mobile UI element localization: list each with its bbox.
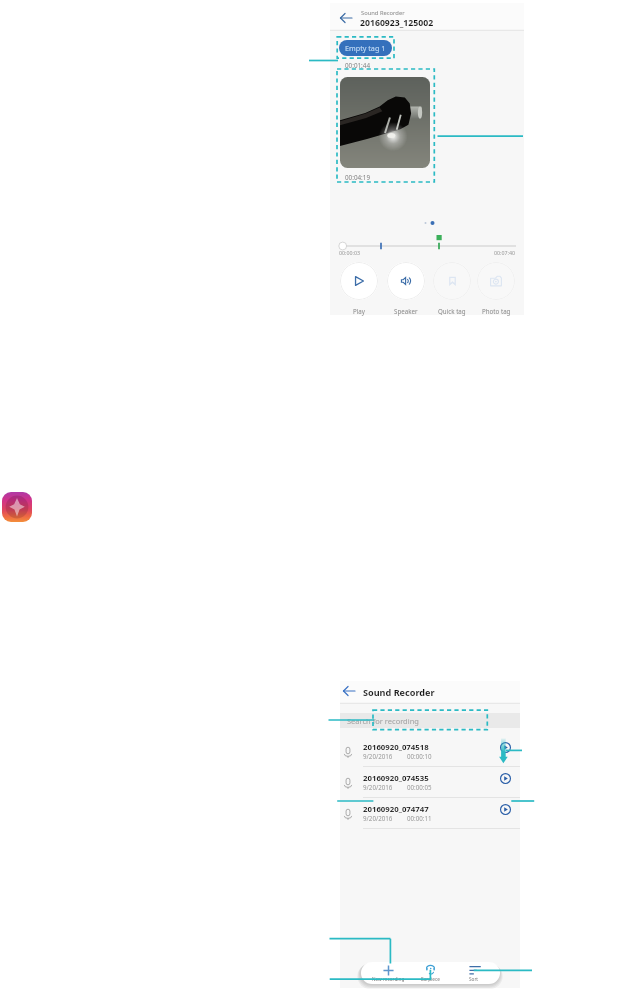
staticText: 20160920_074535 bbox=[363, 773, 429, 784]
button[interactable]: Back bbox=[343, 686, 355, 696]
button[interactable]: Photo tag bbox=[477, 262, 515, 300]
button[interactable]: Quick tag bbox=[433, 262, 471, 300]
staticText: Sort bbox=[469, 976, 479, 982]
staticText: Play bbox=[353, 307, 365, 315]
button[interactable]: Play bbox=[500, 804, 511, 815]
staticText: 00:00:11 bbox=[407, 814, 432, 822]
staticText: 00:00:03 bbox=[339, 249, 361, 256]
staticText: 20160920_074518 bbox=[363, 742, 429, 753]
staticText: 00:00:10 bbox=[407, 752, 432, 760]
button[interactable]: 20160920_074518 bbox=[340, 736, 520, 767]
staticText: Sound Recorder bbox=[363, 686, 435, 698]
staticText: 00:07:40 bbox=[494, 249, 516, 256]
button[interactable]: Speaker bbox=[387, 262, 425, 300]
staticText: Sound Recorder bbox=[361, 9, 405, 17]
staticText: 00:01:44 bbox=[345, 61, 370, 70]
staticText: 00:04:19 bbox=[345, 173, 370, 182]
button[interactable]: 20160920_074747 bbox=[340, 798, 520, 829]
staticText: Search for recording bbox=[347, 716, 419, 726]
button[interactable]: Empty tag 1 bbox=[339, 40, 392, 56]
button[interactable]: 20160920_074535 bbox=[340, 767, 520, 798]
button[interactable]: Search for recording bbox=[340, 713, 520, 728]
staticText: 9/20/2016 bbox=[363, 752, 393, 760]
staticText: 00:00:05 bbox=[407, 783, 432, 791]
staticText: Quick tag bbox=[438, 307, 466, 315]
other: App icon bbox=[2, 492, 32, 522]
staticText: Speaker bbox=[394, 307, 418, 315]
staticText: Photo tag bbox=[482, 307, 511, 315]
staticText: 9/20/2016 bbox=[363, 783, 393, 791]
button[interactable]: Sort bbox=[451, 962, 497, 984]
staticText: 20160923_125002 bbox=[360, 17, 434, 29]
staticText: 20160920_074747 bbox=[363, 804, 429, 815]
button[interactable]: Earpiece bbox=[407, 962, 453, 984]
staticText: New recording bbox=[372, 976, 405, 982]
staticText: Empty tag 1 bbox=[345, 43, 386, 53]
button[interactable]: Back bbox=[340, 13, 352, 23]
button[interactable]: Play bbox=[500, 773, 511, 784]
staticText: 9/20/2016 bbox=[363, 814, 393, 822]
button[interactable]: Play bbox=[340, 262, 378, 300]
staticText: Earpiece bbox=[421, 976, 440, 982]
button[interactable]: New recording bbox=[365, 962, 411, 984]
button[interactable]: Play bbox=[500, 742, 511, 753]
